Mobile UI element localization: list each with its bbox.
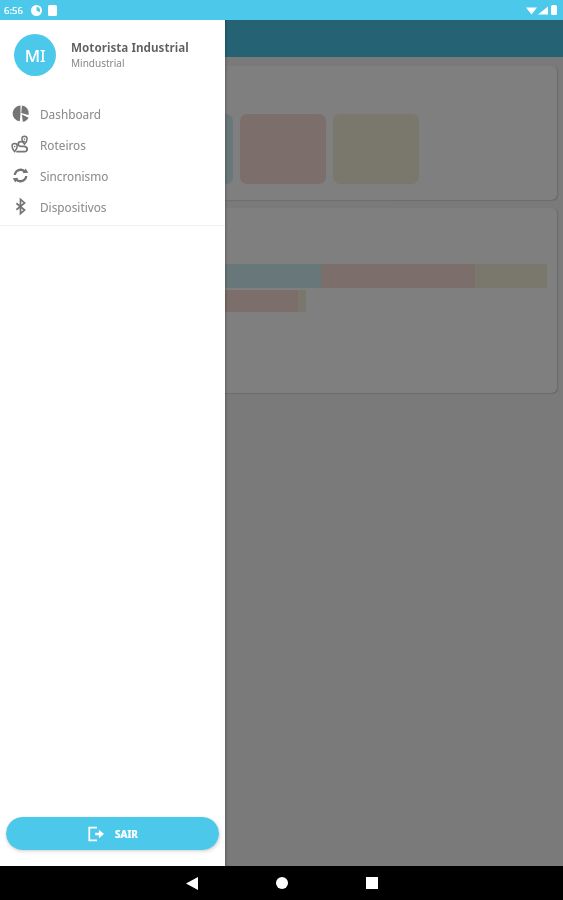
button[interactable]: Roteiros [0,129,225,160]
button[interactable]: Sincronismo [0,160,225,191]
staticText: Dispositivos [40,199,107,215]
staticText: Mindustrial [71,56,125,70]
button[interactable]: SAIR [6,817,219,850]
staticText: MI [25,44,46,66]
button[interactable]: MI [0,20,225,89]
button[interactable]: Recents [344,866,400,900]
staticText: Dashboard [40,106,102,122]
staticText: Sincronismo [40,168,109,184]
button[interactable]: Dashboard [0,98,225,129]
button[interactable]: Dispositivos [0,191,225,222]
button[interactable]: Back [164,866,220,900]
staticText: Motorista Industrial [71,39,189,55]
button[interactable]: Close navigation drawer [0,0,563,900]
button[interactable]: Home [254,866,310,900]
staticText: SAIR [115,827,138,841]
staticText: 6:56 [4,4,23,17]
staticText: Roteiros [40,137,86,153]
